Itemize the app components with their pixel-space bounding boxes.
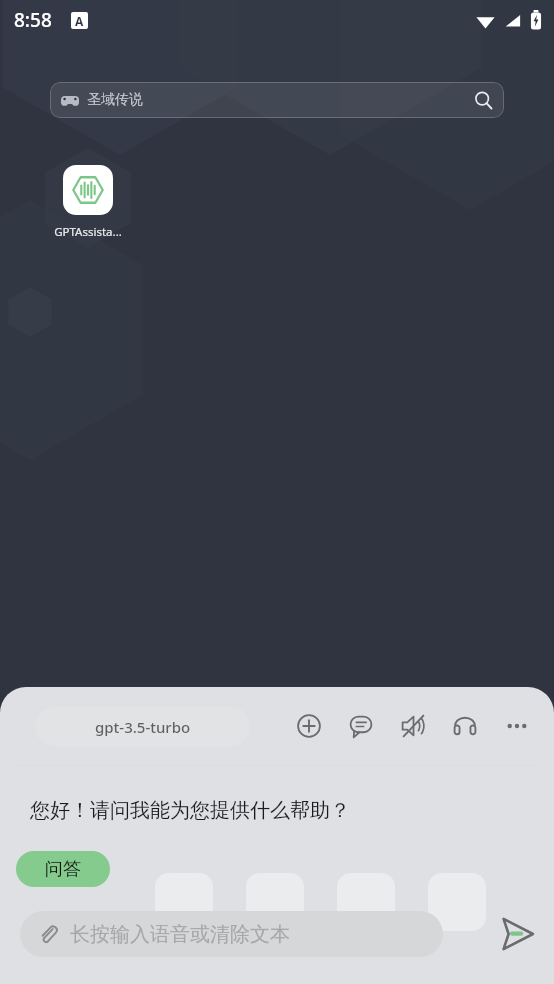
button[interactable]: Send <box>496 913 538 955</box>
button[interactable]: Mute <box>394 707 432 745</box>
button[interactable]: Messages <box>342 707 380 745</box>
other: Search <box>474 91 493 110</box>
staticText: 问答 <box>45 858 81 881</box>
staticText: GPTAssista... <box>54 224 122 240</box>
button[interactable]: 圣域传说 <box>50 82 504 118</box>
staticText: 长按输入语音或清除文本 <box>70 922 290 947</box>
button[interactable]: 长按输入语音或清除文本 <box>20 911 443 957</box>
staticText: gpt-3.5-turbo <box>95 717 191 737</box>
button[interactable]: More <box>498 707 536 745</box>
button[interactable]: Headphones <box>446 707 484 745</box>
staticText: 8:58 <box>14 7 52 33</box>
button[interactable]: Add <box>290 707 328 745</box>
staticText: 您好！请问我能为您提供什么帮助？ <box>30 798 350 823</box>
staticText: 圣域传说 <box>87 91 143 109</box>
button[interactable]: gpt-3.5-turbo <box>35 707 250 746</box>
staticText: A <box>75 13 84 29</box>
button[interactable]: GPTAssista... <box>50 165 126 240</box>
button[interactable]: 问答 <box>16 851 110 887</box>
